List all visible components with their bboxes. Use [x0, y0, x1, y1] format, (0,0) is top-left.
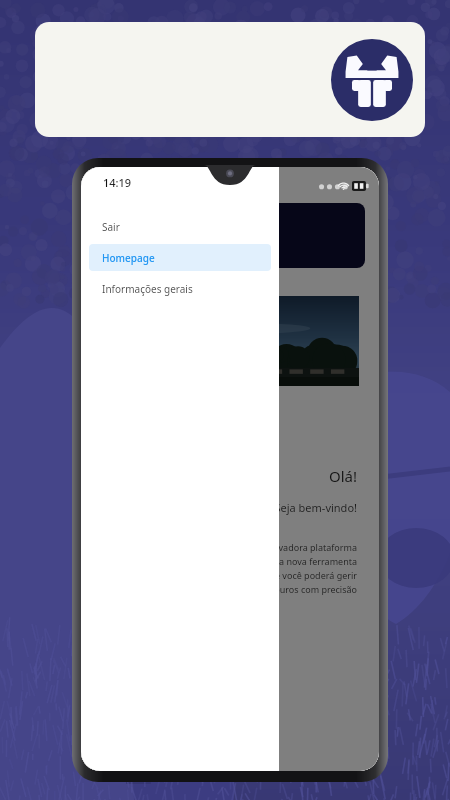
- staticText: 14:19: [103, 175, 132, 190]
- button[interactable]: Logo: [35, 22, 425, 137]
- button[interactable]: Sair: [89, 213, 271, 240]
- staticText: Homepage: [102, 251, 155, 265]
- button[interactable]: Homepage: [89, 244, 271, 271]
- other: Logo: [331, 39, 413, 121]
- staticText: Sair: [102, 220, 120, 234]
- staticText: Olá!: [81, 466, 357, 486]
- button[interactable]: Informações gerais: [89, 275, 271, 302]
- staticText: Seja bem-vindo!: [81, 500, 357, 515]
- staticText: Informações gerais: [102, 282, 193, 296]
- staticText: Essa inovadora plataforma é a sua nova f…: [81, 541, 357, 596]
